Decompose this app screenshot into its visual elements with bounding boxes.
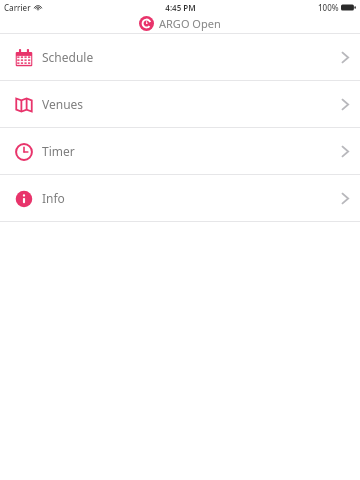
button[interactable]: Venues	[0, 81, 360, 127]
button[interactable]: Schedule	[0, 34, 360, 80]
staticText: Carrier	[4, 2, 31, 13]
other: Schedule	[15, 49, 33, 67]
staticText: Timer	[42, 143, 75, 159]
staticText: Venues	[42, 96, 84, 112]
other: Timer	[15, 143, 33, 161]
staticText: 4:45 PM	[165, 2, 196, 13]
other: Venues	[15, 96, 33, 114]
other: Info	[15, 190, 33, 208]
staticText: ARGO Open	[159, 16, 221, 31]
staticText: Info	[42, 190, 65, 206]
button[interactable]: Timer	[0, 128, 360, 174]
button[interactable]: Info	[0, 175, 360, 221]
staticText: 100%	[318, 2, 339, 13]
staticText: Schedule	[42, 49, 94, 65]
